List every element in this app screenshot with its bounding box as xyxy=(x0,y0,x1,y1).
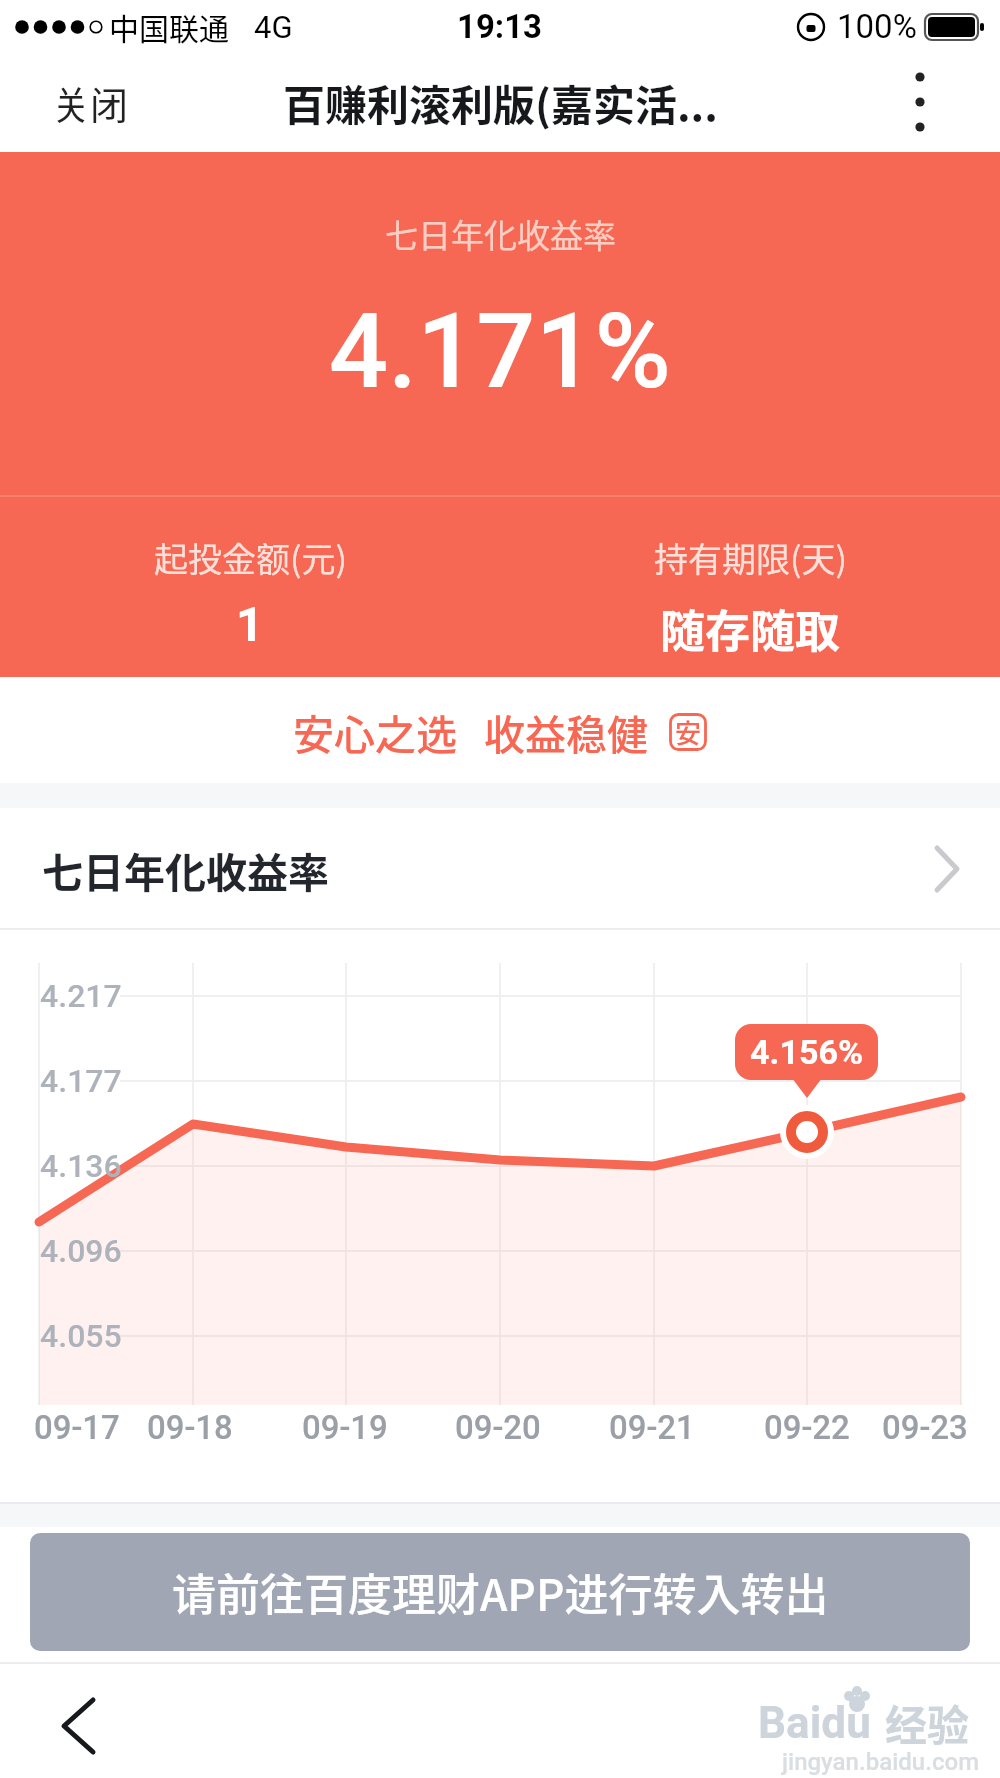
staticText: 随存随取 xyxy=(660,596,841,661)
staticText: 持有期限(天) xyxy=(654,533,847,582)
staticText: 4.096 xyxy=(40,1232,122,1270)
staticText: 09-23 xyxy=(882,1408,968,1442)
staticText: 09-20 xyxy=(455,1408,541,1442)
staticText: 19:13 xyxy=(457,7,543,46)
staticText: 4.177 xyxy=(40,1062,122,1100)
staticText: 中国联通 xyxy=(109,5,229,48)
staticText: 起投金额(元) xyxy=(154,533,347,582)
staticText: 经验 xyxy=(885,1692,970,1753)
staticText: 4G xyxy=(254,9,293,45)
staticText: 安心之选 xyxy=(293,702,457,761)
staticText: 请前往百度理财APP进行转入转出 xyxy=(172,1560,829,1624)
button[interactable] xyxy=(40,1688,116,1764)
staticText: 百赚利滚利版(嘉实活... xyxy=(283,72,718,133)
staticText: 4.171% xyxy=(329,291,671,413)
staticText: 4.156% xyxy=(750,1032,864,1072)
button[interactable]: 关闭 xyxy=(36,67,145,138)
staticText: 七日年化收益率 xyxy=(42,840,329,899)
button[interactable]: 七日年化收益率 xyxy=(0,808,1000,930)
staticText: 4.136 xyxy=(40,1147,122,1185)
staticText: 七日年化收益率 xyxy=(385,210,616,258)
button[interactable] xyxy=(898,62,942,142)
button[interactable]: 请前往百度理财APP进行转入转出 xyxy=(30,1533,970,1651)
staticText: Baidu xyxy=(758,1697,871,1749)
staticText: 09-19 xyxy=(302,1408,388,1442)
staticText: 关闭 xyxy=(52,75,129,130)
staticText: 4.217 xyxy=(40,977,122,1015)
staticText: jingyan.baidu.com xyxy=(782,1748,980,1776)
staticText: 09-17 xyxy=(34,1408,120,1442)
staticText: 100% xyxy=(837,7,917,46)
staticText: 安 xyxy=(675,713,702,751)
staticText: 1 xyxy=(236,596,264,652)
staticText: 09-21 xyxy=(609,1408,695,1442)
staticText: 09-18 xyxy=(147,1408,233,1442)
staticText: 09-22 xyxy=(764,1408,850,1442)
staticText: 4.055 xyxy=(40,1317,122,1355)
staticText: 收益稳健 xyxy=(484,702,648,761)
